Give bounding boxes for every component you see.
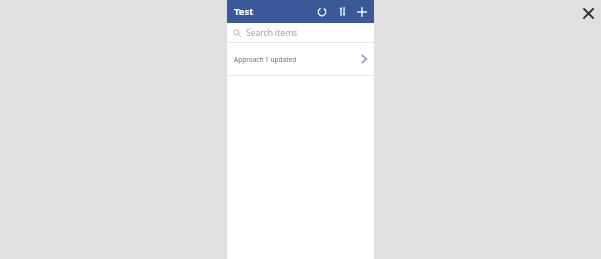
button[interactable]: Close [577,2,599,24]
button[interactable]: Add [352,0,372,23]
button[interactable]: Search items [227,23,374,42]
button[interactable]: Refresh [312,0,332,23]
button[interactable]: Approach 1 updated [227,43,374,75]
staticText: Search items [246,27,298,39]
staticText: Approach 1 updated [234,55,360,64]
button[interactable]: Sort [332,0,352,23]
staticText: Test [234,5,254,18]
